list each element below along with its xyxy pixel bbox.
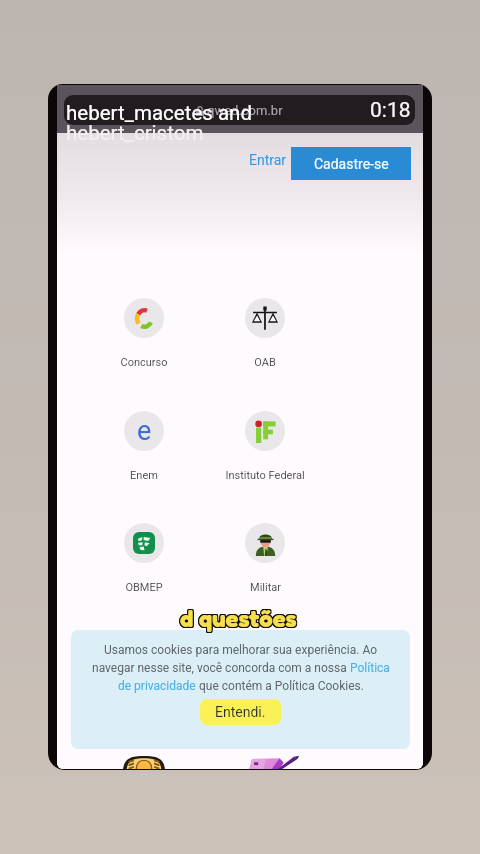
staticText: Política [350,661,390,675]
staticText: Militar [250,581,281,594]
button[interactable]: OAB [208,298,322,369]
staticText: d questões [181,605,298,634]
staticText: d questões [181,603,298,632]
staticText: d questões [181,605,298,634]
button[interactable]: Cadastre-se [291,147,411,180]
staticText: Enem [130,469,158,482]
staticText: d questões [180,604,297,633]
staticText: d questões [181,605,298,634]
staticText: d questões [180,605,297,634]
other: Cadernos [248,756,299,769]
button[interactable]: Entrar [243,147,293,173]
other: Dicas [123,756,165,769]
staticText: d questões [181,603,298,632]
staticText: 0:18 [370,98,411,123]
staticText: d questões [181,604,298,633]
button[interactable]: qwed.com.br [64,95,415,125]
button[interactable]: Instituto Federal [208,411,322,482]
staticText: d questões [179,605,296,634]
staticText: Entrar [249,152,287,168]
staticText: d questões [179,603,296,632]
staticText: de privacidade [118,679,196,693]
staticText: hebert_macetes and [66,101,252,125]
staticText: d questões [179,604,296,633]
button[interactable]: Entendi. [200,699,281,725]
button[interactable]: Concurso [87,298,201,369]
staticText: d questões [179,603,296,632]
staticText: que contém a Política Cookies. [196,679,364,693]
staticText: d questões [179,605,296,634]
staticText: d questões [181,603,298,632]
staticText: Entendi. [215,704,266,720]
button[interactable]: OBMEP [87,523,201,594]
staticText: d questões [179,605,296,634]
staticText: qwed.com.br [207,103,283,118]
staticText: hebert_cristom [66,121,204,145]
staticText: d questões [179,603,296,632]
staticText: OAB [254,356,276,369]
staticText: d questões [180,603,297,632]
staticText: Cadastre-se [314,156,389,172]
staticText: Instituto Federal [225,469,305,482]
staticText: e [137,415,152,447]
button[interactable]: Militar [208,523,322,594]
staticText: Usamos cookies para melhorar sua experiê… [104,643,377,657]
staticText: OBMEP [125,581,163,594]
staticText: navegar nesse site, você concorda com a … [92,661,350,675]
staticText: Concurso [120,356,168,369]
button[interactable]: e [87,411,201,482]
